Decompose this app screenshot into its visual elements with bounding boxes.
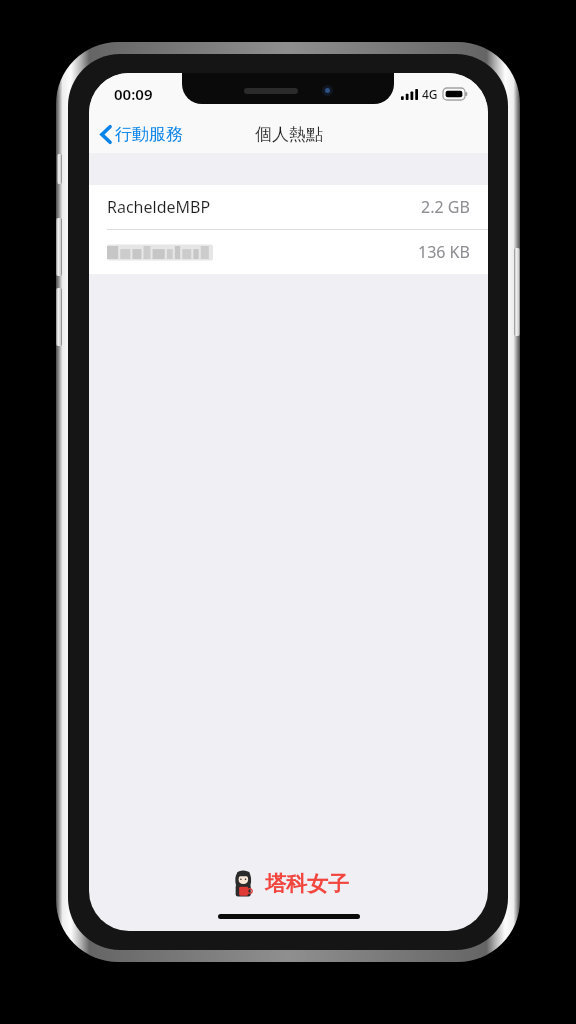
staticText: RacheldeMBP bbox=[107, 196, 211, 218]
staticText: 個人熱點 bbox=[255, 124, 323, 145]
staticText: 塔科女子 bbox=[265, 871, 349, 897]
button[interactable]: Hidden device name bbox=[89, 230, 488, 274]
staticText: 4G bbox=[422, 86, 438, 102]
button[interactable]: RacheldeMBP bbox=[89, 185, 488, 229]
button[interactable]: 行動服務 bbox=[89, 119, 195, 150]
staticText: 136 KB bbox=[418, 241, 470, 263]
staticText: 2.2 GB bbox=[421, 196, 470, 218]
other: Hidden device name bbox=[107, 246, 213, 259]
staticText: 行動服務 bbox=[115, 124, 183, 145]
staticText: 00:09 bbox=[114, 84, 153, 104]
